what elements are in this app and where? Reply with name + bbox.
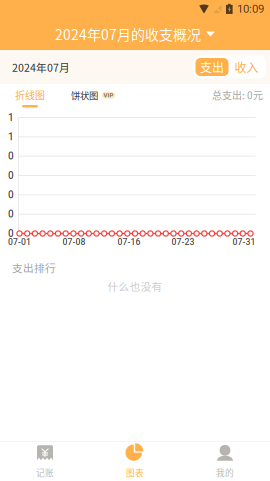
button[interactable]: 图表 [90,441,180,481]
staticText: 什么也没有 [107,278,162,294]
staticText: 折线图 [15,88,45,102]
staticText: 2024年07月的收支概况 [55,24,201,44]
staticText: 0 [8,150,14,162]
staticText: 饼状图 [71,88,98,102]
staticText: 0 [8,228,14,239]
staticText: 07-31 [232,237,255,247]
staticText: 支出 [200,58,224,76]
staticText: 收入 [234,58,258,76]
button[interactable]: 2024年07月的收支概况 [0,18,270,50]
button[interactable]: 折线图 [15,88,45,107]
staticText: 我的 [216,466,234,479]
button[interactable]: 收入 [229,58,263,76]
staticText: 0 [8,170,14,181]
staticText: 支出排行 [12,260,56,275]
staticText: 07-08 [62,237,85,247]
staticText: 2024年07月 [12,59,70,75]
staticText: 图表 [126,466,144,479]
button[interactable]: 我的 [180,441,270,481]
staticText: VIP [103,92,113,99]
button[interactable]: 支出 [195,58,228,76]
staticText: 1 [8,131,14,143]
staticText: 1 [8,112,14,123]
button[interactable]: 饼状图 [71,88,115,107]
staticText: 总支出: 0元 [212,88,263,102]
staticText: 07-16 [117,237,140,247]
button[interactable]: 记账 [0,441,90,481]
staticText: 07-01 [8,237,31,247]
staticText: 07-23 [171,237,194,247]
staticText: 0 [8,208,14,220]
staticText: 记账 [36,466,54,479]
staticText: 10:09 [237,2,264,16]
staticText: 0 [8,189,14,201]
